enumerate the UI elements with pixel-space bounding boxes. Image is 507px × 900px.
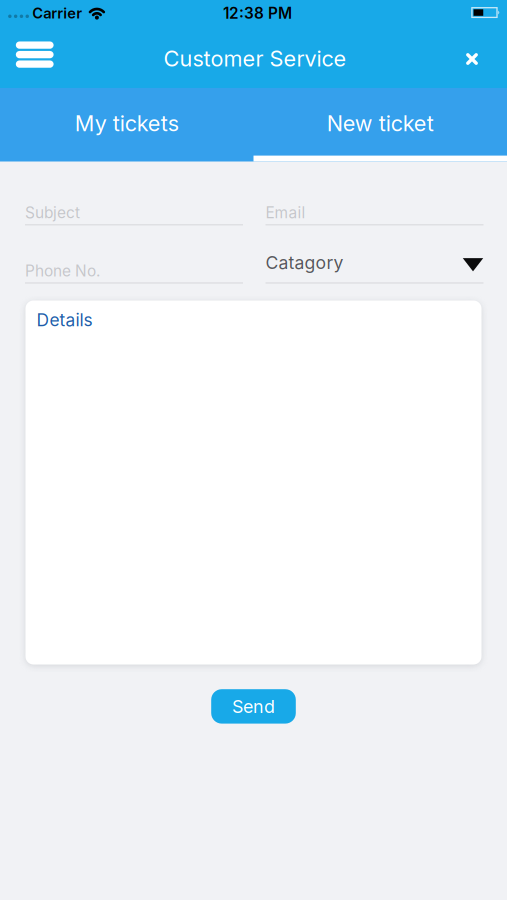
button[interactable]: Close <box>452 37 492 81</box>
staticText: Send <box>232 696 275 717</box>
staticText: Customer Service <box>163 45 346 72</box>
button[interactable]: Catagory <box>265 252 483 284</box>
button[interactable]: New ticket <box>253 88 507 161</box>
button[interactable]: My tickets <box>0 88 253 161</box>
staticText: Details <box>36 309 92 330</box>
staticText: Carrier <box>32 4 82 22</box>
button[interactable]: Details <box>25 300 481 664</box>
staticText: Subject <box>25 203 80 222</box>
button[interactable]: Send <box>211 689 296 724</box>
staticText: Catagory <box>265 252 343 273</box>
staticText: Email <box>265 203 305 222</box>
staticText: New ticket <box>327 110 434 136</box>
staticText: Phone No. <box>25 261 100 280</box>
staticText: My tickets <box>75 110 179 136</box>
staticText: 12:38 PM <box>223 4 292 22</box>
button[interactable]: Menu <box>8 31 62 79</box>
button[interactable]: Phone No. <box>25 261 243 284</box>
button[interactable]: Email <box>265 203 483 225</box>
button[interactable]: Subject <box>25 203 243 225</box>
